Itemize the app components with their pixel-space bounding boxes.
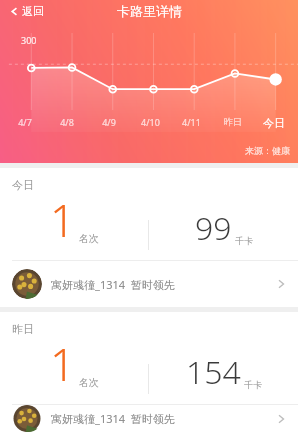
staticText: 寓妍彧徸_1314 暂时领先: [51, 277, 175, 292]
staticText: 昨日: [224, 116, 242, 127]
staticText: 4/10: [141, 116, 160, 128]
staticText: 名次: [79, 376, 99, 389]
staticText: 300: [21, 34, 37, 46]
staticText: 今日: [12, 178, 34, 192]
staticText: 卡路里详情: [117, 3, 182, 19]
staticText: 今日: [263, 116, 285, 130]
staticText: 99: [195, 206, 232, 250]
other: 查看详情: [276, 279, 286, 289]
staticText: 4/7: [18, 116, 32, 128]
staticText: 名次: [79, 232, 99, 245]
staticText: 154: [186, 350, 241, 394]
staticText: 千卡: [235, 235, 253, 246]
staticText: 1: [50, 334, 76, 394]
other: 查看详情: [276, 414, 286, 424]
staticText: 4/11: [182, 116, 201, 128]
staticText: 寓妍彧徸_1314 暂时领先: [51, 411, 175, 426]
button[interactable]: 返回: [6, 2, 48, 20]
staticText: 1: [50, 190, 76, 250]
button[interactable]: 寓妍彧徸_1314 暂时领先: [0, 405, 298, 432]
button[interactable]: 寓妍彧徸_1314 暂时领先: [0, 261, 298, 307]
staticText: 来源：健康: [245, 145, 290, 156]
staticText: 千卡: [244, 379, 262, 390]
staticText: 4/9: [102, 116, 116, 128]
staticText: 4/8: [60, 116, 74, 128]
staticText: 返回: [22, 4, 44, 18]
staticText: 昨日: [12, 322, 34, 336]
